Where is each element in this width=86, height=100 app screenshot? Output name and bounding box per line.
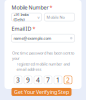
staticText: 9 <box>26 75 30 84</box>
staticText: +91 India (Delhi) <box>13 12 28 22</box>
staticText: 7 <box>46 75 50 84</box>
button[interactable]: Get Your Verifying Step <box>11 88 71 96</box>
button[interactable]: name@example.com <box>11 34 74 42</box>
button[interactable]: +91 India (Delhi) <box>11 13 41 21</box>
staticText: Mobile No <box>46 14 64 20</box>
staticText: 3 <box>16 75 20 84</box>
staticText: Mobile Number <box>11 4 48 11</box>
staticText: Get Your Verifying Step <box>14 88 69 95</box>
staticText: 1 <box>56 75 60 84</box>
staticText: registered mobile number and email addre… <box>16 61 69 72</box>
staticText: 2 <box>66 75 70 84</box>
staticText: Email ID <box>11 25 31 32</box>
staticText: v <box>37 14 39 20</box>
staticText: 4 <box>36 75 40 84</box>
staticText: * <box>32 25 35 32</box>
staticText: name@example.com <box>13 35 51 41</box>
button[interactable]: Mobile No <box>44 13 74 21</box>
staticText: One time password has been sent to your <box>12 50 74 61</box>
staticText: * <box>49 4 52 11</box>
